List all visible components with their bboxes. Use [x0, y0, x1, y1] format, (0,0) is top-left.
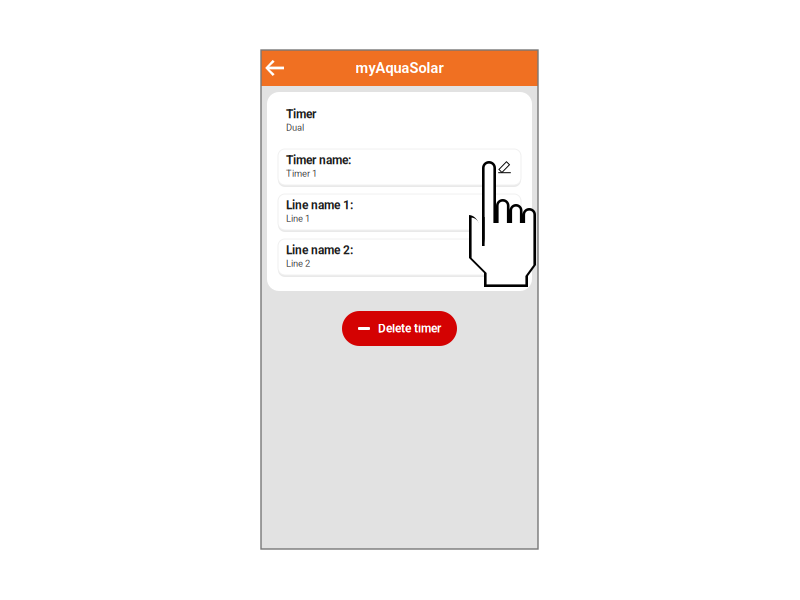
staticText: Delete timer — [378, 321, 441, 336]
staticText: Timer — [286, 107, 316, 121]
staticText: Line name 2: — [286, 243, 353, 257]
button[interactable]: Line name 1: — [278, 194, 521, 230]
staticText: Line 1 — [286, 213, 310, 224]
button[interactable]: Back — [261, 50, 291, 86]
button[interactable]: Timer name: — [278, 149, 521, 185]
staticText: Timer name: — [286, 153, 351, 167]
button[interactable]: Line name 2: — [278, 239, 521, 275]
button[interactable]: Delete timer — [342, 311, 457, 346]
staticText: Dual — [286, 122, 304, 133]
staticText: Line 2 — [286, 258, 310, 269]
staticText: Timer 1 — [286, 168, 317, 179]
staticText: myAquaSolar — [355, 59, 443, 77]
staticText: Line name 1: — [286, 198, 353, 212]
